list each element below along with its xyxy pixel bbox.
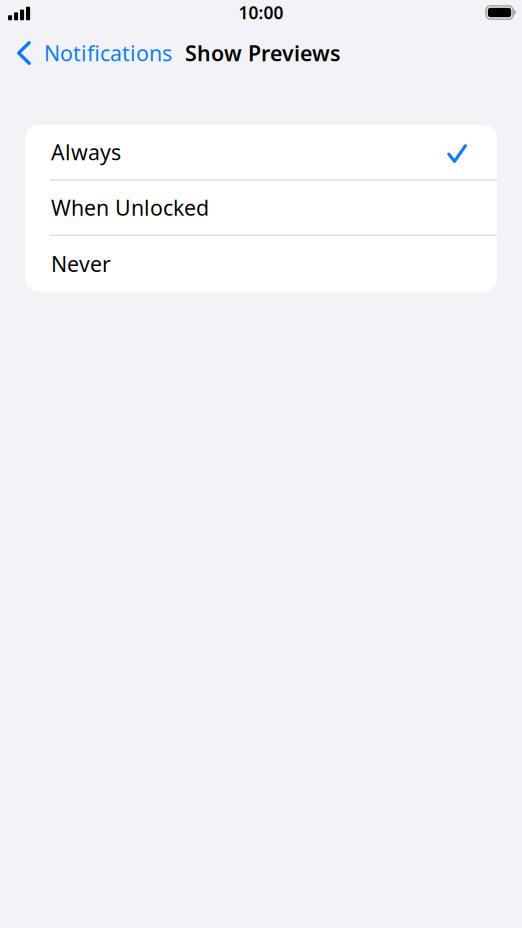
button[interactable]: Never: [25, 236, 497, 291]
button[interactable]: Always: [25, 125, 497, 180]
button[interactable]: When Unlocked: [25, 180, 497, 236]
staticText: Always: [51, 138, 121, 166]
staticText: 10:00: [238, 1, 283, 24]
button[interactable]: Notifications: [0, 30, 180, 76]
staticText: Notifications: [44, 39, 172, 67]
staticText: When Unlocked: [51, 193, 209, 222]
staticText: Never: [51, 250, 111, 278]
staticText: Show Previews: [185, 39, 341, 67]
